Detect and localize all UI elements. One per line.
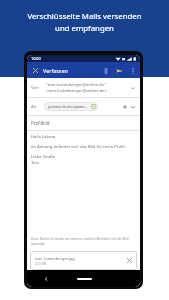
staticText: Diese Nachricht wurde von meinem mobilen…	[31, 237, 134, 246]
button[interactable]: Attach file	[100, 65, 111, 76]
button[interactable]: Back	[44, 270, 140, 287]
staticText: 213 KB	[35, 261, 47, 266]
button[interactable]: toni_lustenberger.jpg	[35, 251, 134, 270]
staticText: Hallo Juliana,	[31, 134, 57, 140]
staticText: Liebe Grüße	[31, 154, 56, 160]
staticText: 10:00	[31, 56, 41, 61]
staticText: An	[31, 104, 37, 110]
staticText: Verschlüsselte Mails versenden und empfa…	[27, 11, 142, 33]
button[interactable]: Add recipient	[121, 103, 128, 110]
button[interactable]: Close	[30, 65, 40, 75]
staticText: im Anhang befindet sich das Bild für mei…	[31, 144, 126, 150]
staticText: toni_lustenberger.jpg	[35, 256, 75, 261]
button[interactable]: juliana.muenzgewic...	[48, 102, 96, 111]
staticText: Profilbild	[31, 120, 50, 126]
button[interactable]: Expand	[129, 103, 136, 110]
staticText: "toni.lustenberger@online.de"	[46, 82, 106, 88]
staticText: Von	[31, 85, 39, 91]
button[interactable]: Home	[76, 276, 92, 282]
staticText: Verfassen	[43, 67, 68, 74]
button[interactable]: Remove attachment	[125, 256, 134, 265]
button[interactable]: Send	[114, 65, 125, 76]
staticText: <toni.lustenberger@online.de>	[46, 88, 108, 94]
staticText: Toni	[31, 160, 40, 166]
staticText: juliana.muenzgewic...	[48, 104, 89, 109]
button[interactable]: More options	[128, 66, 137, 75]
